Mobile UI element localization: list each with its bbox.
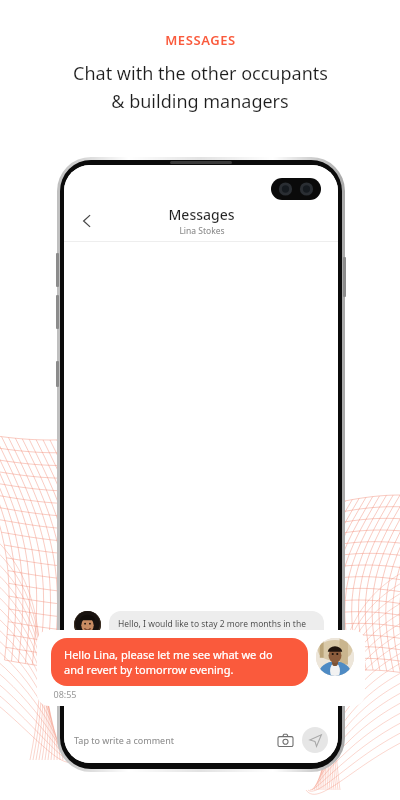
button[interactable]: Camera — [274, 729, 296, 751]
staticText: Messages — [168, 205, 235, 224]
staticText: Hello Lina, please let me see what we do… — [64, 647, 295, 677]
button[interactable]: Hello Lina, please let me see what we do… — [51, 638, 354, 686]
staticText: MESSAGES — [165, 31, 236, 49]
staticText: Hello, I would like to stay 2 more month… — [118, 618, 315, 654]
staticText: Lina Stokes — [179, 225, 225, 237]
button[interactable]: Send — [302, 727, 328, 753]
staticText: Chat with the other occupants — [73, 61, 328, 86]
staticText: 08:55 — [53, 688, 77, 700]
staticText: Tap to write a comment — [74, 734, 174, 746]
button[interactable]: Back — [70, 204, 104, 238]
button[interactable]: Hello, I would like to stay 2 more month… — [74, 611, 324, 661]
button[interactable]: Tap to write a comment — [74, 723, 328, 757]
staticText: & building managers — [111, 89, 289, 114]
